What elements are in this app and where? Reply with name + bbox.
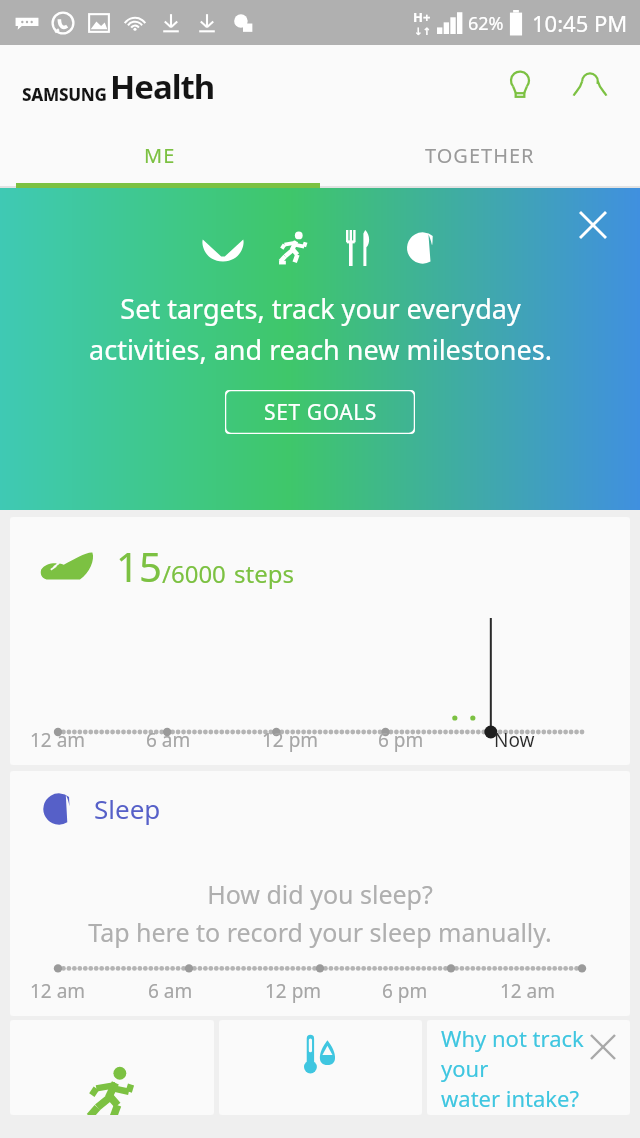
button[interactable]: TOGETHER: [320, 127, 640, 183]
staticText: 10:45 PM: [532, 8, 628, 38]
button[interactable]: SAMSUNG: [22, 64, 215, 109]
staticText: Tap here to record your sleep manually.: [88, 915, 552, 949]
button[interactable]: [10, 1020, 214, 1115]
button[interactable]: 15: [10, 517, 630, 765]
button[interactable]: ME: [0, 127, 320, 183]
staticText: 6 am: [148, 978, 193, 1004]
button[interactable]: Dismiss: [427, 1020, 630, 1115]
staticText: water intake?: [441, 1083, 580, 1113]
button[interactable]: Sleep: [10, 771, 630, 1016]
staticText: 12 am: [499, 978, 555, 1004]
staticText: SET GOALS: [264, 398, 377, 427]
staticText: ↓↑: [414, 26, 431, 38]
button[interactable]: Tips: [494, 60, 546, 112]
staticText: 15: [116, 539, 162, 593]
staticText: 12 pm: [265, 978, 322, 1004]
staticText: Why not track your: [441, 1023, 630, 1083]
staticText: How did you sleep?: [207, 877, 433, 911]
staticText: 12 am: [30, 727, 86, 753]
button[interactable]: Dismiss: [582, 1026, 624, 1068]
staticText: 12 am: [30, 978, 86, 1004]
button[interactable]: SET GOALS: [225, 390, 415, 434]
staticText: 12 pm: [262, 727, 319, 753]
staticText: Now: [494, 727, 535, 753]
staticText: 6 am: [146, 727, 191, 753]
button[interactable]: Close banner: [0, 188, 640, 510]
staticText: activities, and reach new milestones.: [89, 331, 552, 368]
button[interactable]: Close banner: [570, 202, 616, 248]
staticText: 6 pm: [382, 978, 428, 1004]
button[interactable]: [219, 1020, 422, 1115]
staticText: TOGETHER: [425, 142, 535, 169]
staticText: SAMSUNG: [22, 83, 107, 106]
staticText: 62%: [468, 11, 504, 36]
staticText: Health: [110, 64, 215, 109]
button[interactable]: Profile: [564, 60, 616, 112]
staticText: ME: [144, 142, 176, 169]
staticText: steps: [234, 557, 294, 590]
staticText: H+: [413, 8, 431, 26]
staticText: Sleep: [94, 791, 161, 826]
staticText: Set targets, track your everyday: [120, 290, 521, 327]
staticText: 6 pm: [378, 727, 424, 753]
staticText: /6000: [162, 557, 226, 590]
